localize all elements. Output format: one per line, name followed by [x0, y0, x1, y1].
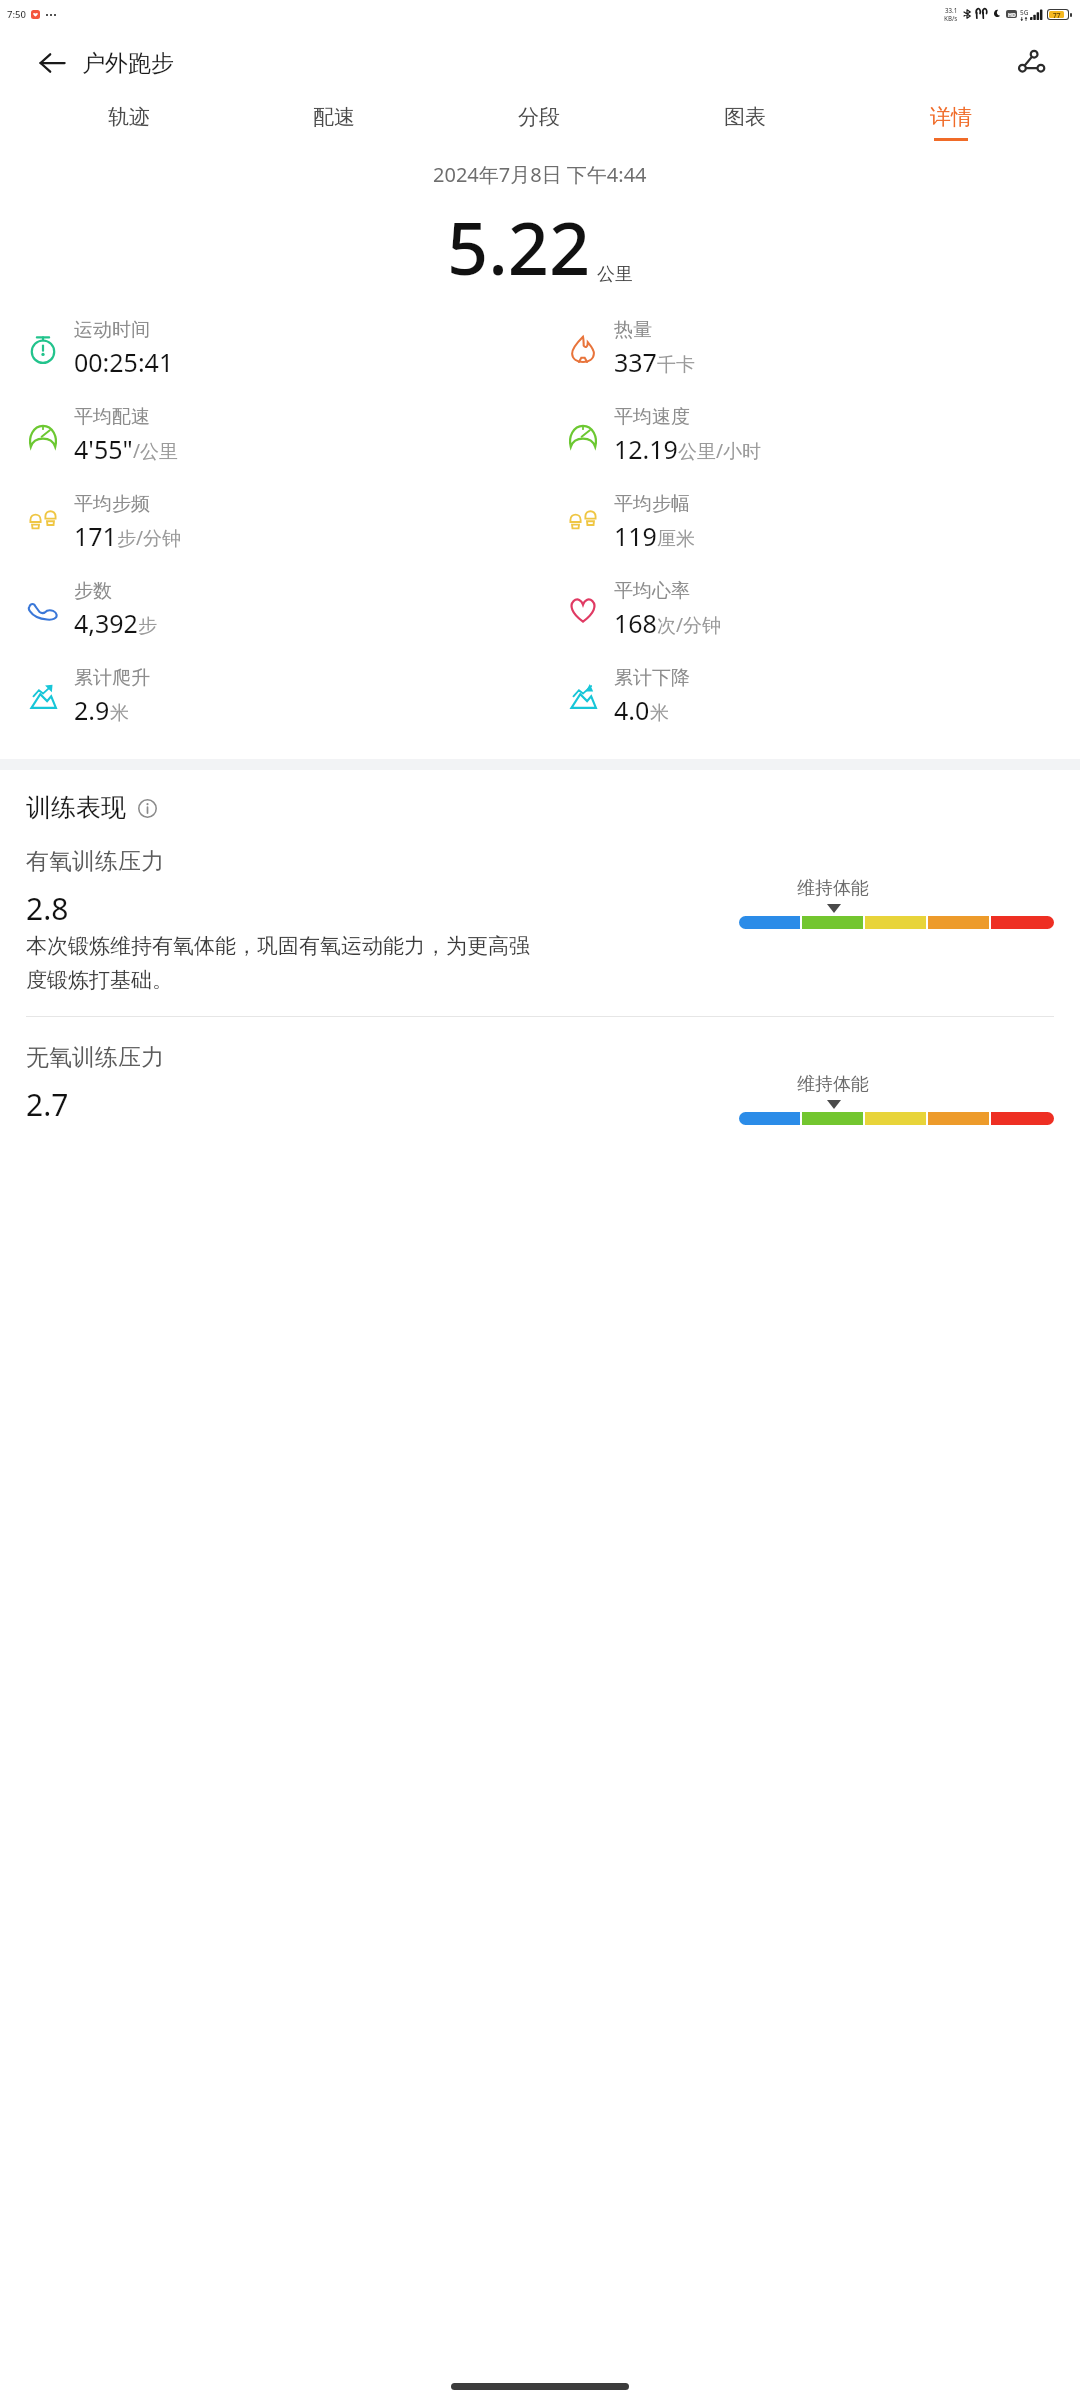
- staticText: 4,392: [74, 606, 138, 640]
- staticText: 厘米: [657, 527, 695, 551]
- button[interactable]: 分享: [1006, 38, 1056, 88]
- button[interactable]: 平均步幅: [540, 486, 1080, 559]
- staticText: 7:50: [7, 8, 26, 21]
- button[interactable]: 平均心率: [540, 573, 1080, 646]
- staticText: 平均步幅: [614, 492, 690, 516]
- button[interactable]: 热量: [540, 312, 1080, 385]
- staticText: 步: [138, 614, 157, 638]
- staticText: 5.22: [447, 198, 591, 296]
- button[interactable]: 轨迹: [26, 98, 231, 147]
- staticText: KB/s: [944, 14, 958, 22]
- staticText: 平均步频: [74, 492, 150, 516]
- button[interactable]: 详情: [848, 98, 1054, 147]
- staticText: 本次锻炼维持有氧体能，巩固有氧运动能力，为更高强 度锻炼打基础。: [26, 933, 531, 994]
- staticText: 户外跑步: [82, 49, 174, 78]
- staticText: 运动时间: [74, 318, 150, 342]
- staticText: 平均心率: [614, 579, 690, 603]
- staticText: 图表: [724, 104, 766, 130]
- button[interactable]: 运动时间: [0, 312, 540, 385]
- button[interactable]: 配速: [231, 98, 436, 147]
- staticText: 171: [74, 519, 117, 553]
- staticText: 步数: [74, 579, 112, 603]
- staticText: 4'55": [74, 432, 133, 466]
- staticText: 00:25:41: [74, 345, 174, 379]
- staticText: 维持体能: [797, 1073, 869, 1096]
- staticText: 步/分钟: [117, 525, 182, 551]
- staticText: 33.1: [945, 6, 958, 14]
- staticText: 4.0: [614, 693, 650, 727]
- button[interactable]: 说明: [134, 795, 160, 821]
- staticText: 热量: [614, 318, 652, 342]
- staticText: 平均速度: [614, 405, 690, 429]
- staticText: 2024年7月8日 下午4:44: [433, 161, 647, 188]
- staticText: 公里: [597, 263, 633, 286]
- staticText: 累计爬升: [74, 666, 150, 690]
- staticText: 详情: [930, 104, 972, 130]
- staticText: 2.7: [26, 1084, 69, 1125]
- staticText: 公里/小时: [678, 438, 762, 464]
- staticText: 有氧训练压力: [26, 847, 164, 876]
- staticText: 训练表现: [26, 792, 126, 823]
- staticText: 77: [1053, 11, 1061, 18]
- button[interactable]: 图表: [642, 98, 848, 147]
- button[interactable]: 返回: [26, 37, 78, 89]
- button[interactable]: 平均步频: [0, 486, 540, 559]
- staticText: 2.9: [74, 693, 110, 727]
- staticText: 5G: [1020, 8, 1029, 17]
- button[interactable]: 累计爬升: [0, 660, 540, 733]
- staticText: 2.8: [26, 888, 69, 929]
- staticText: HD: [1008, 11, 1016, 18]
- staticText: 轨迹: [108, 104, 150, 130]
- staticText: 米: [650, 701, 669, 725]
- staticText: 无氧训练压力: [26, 1043, 164, 1072]
- staticText: 维持体能: [797, 877, 869, 900]
- staticText: 12.19: [614, 432, 678, 466]
- staticText: 千卡: [657, 353, 695, 377]
- staticText: 平均配速: [74, 405, 150, 429]
- staticText: 米: [110, 701, 129, 725]
- staticText: 337: [614, 345, 657, 379]
- button[interactable]: 平均速度: [540, 399, 1080, 472]
- staticText: 分段: [518, 104, 560, 130]
- staticText: 次/分钟: [657, 612, 722, 638]
- staticText: /公里: [133, 438, 179, 464]
- staticText: 配速: [313, 104, 355, 130]
- staticText: 168: [614, 606, 657, 640]
- button[interactable]: 步数: [0, 573, 540, 646]
- button[interactable]: 平均配速: [0, 399, 540, 472]
- staticText: 累计下降: [614, 666, 690, 690]
- button[interactable]: 累计下降: [540, 660, 1080, 733]
- staticText: 119: [614, 519, 657, 553]
- button[interactable]: 分段: [436, 98, 642, 147]
